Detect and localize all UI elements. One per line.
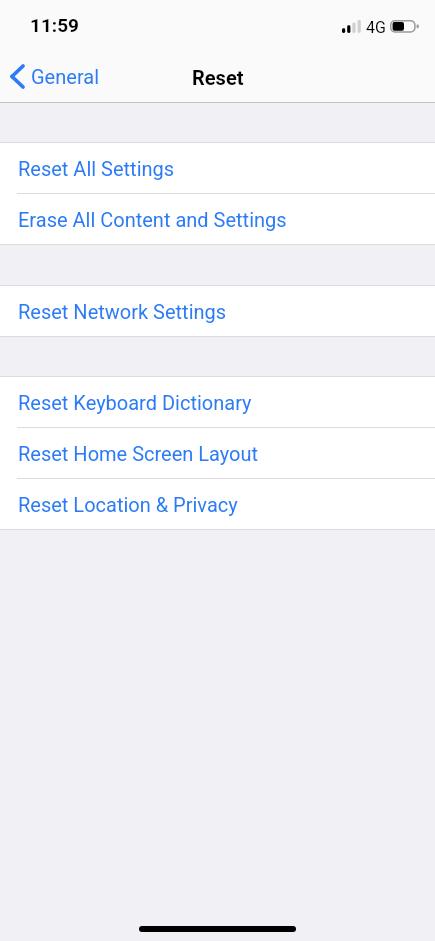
staticText: Reset Location & Privacy — [18, 493, 238, 516]
button[interactable]: Reset Home Screen Layout — [0, 428, 435, 479]
staticText: Reset Network Settings — [18, 300, 227, 323]
staticText: 4G — [366, 18, 386, 37]
staticText: Reset All Settings — [18, 157, 175, 180]
button[interactable]: Back to General — [0, 63, 112, 90]
button[interactable]: Reset All Settings — [0, 143, 435, 194]
button[interactable]: Reset Keyboard Dictionary — [0, 377, 435, 428]
other: Cellular signal strength — [342, 20, 361, 33]
button[interactable]: Erase All Content and Settings — [0, 194, 435, 244]
staticText: General — [31, 65, 100, 88]
staticText: 11:59 — [30, 14, 79, 36]
button[interactable]: Reset Location & Privacy — [0, 479, 435, 529]
other: Battery — [390, 20, 419, 33]
staticText: Reset — [192, 66, 244, 89]
staticText: Reset Keyboard Dictionary — [18, 391, 252, 414]
staticText: Reset Home Screen Layout — [18, 442, 259, 465]
staticText: Erase All Content and Settings — [18, 208, 287, 231]
button[interactable]: Reset Network Settings — [0, 286, 435, 336]
